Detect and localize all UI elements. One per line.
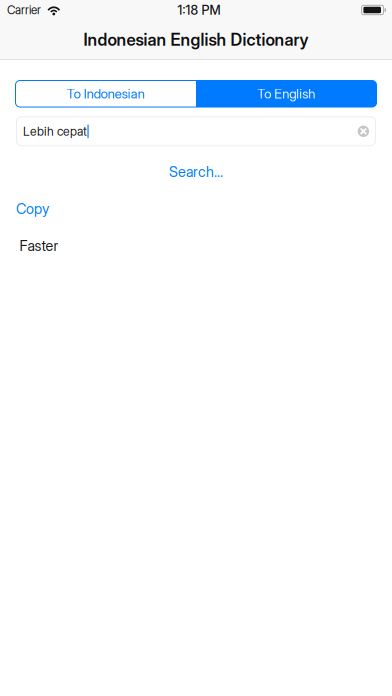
staticText: Carrier [7,3,41,17]
staticText: Indonesian English Dictionary [83,30,308,50]
staticText: Search... [169,163,223,180]
staticText: Copy [16,200,49,217]
staticText: Lebih cepat [23,124,87,139]
staticText: Faster [19,237,58,254]
button[interactable]: Search... [0,160,392,184]
staticText: To Indonesian [67,86,145,102]
button[interactable]: Search text field, Lebih cepat [16,117,375,146]
staticText: 1:18 PM [177,2,220,18]
staticText: To English [257,86,315,102]
button[interactable]: To English [196,80,376,107]
button[interactable]: Copy [16,198,49,220]
button[interactable]: To Indonesian [15,80,196,107]
